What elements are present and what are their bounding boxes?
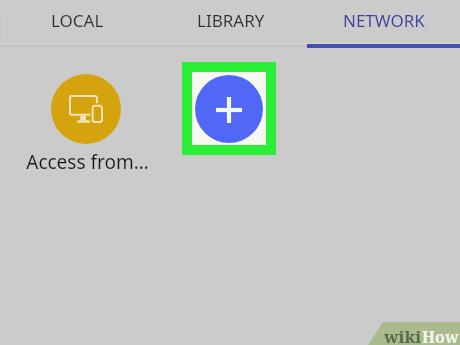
staticText: wiki: [384, 325, 422, 345]
button[interactable]: LIBRARY: [154, 0, 307, 48]
staticText: LIBRARY: [197, 9, 265, 32]
button[interactable]: Add network location: [195, 75, 263, 143]
button[interactable]: Access from another device: [51, 74, 121, 144]
button[interactable]: NETWORK: [307, 0, 460, 48]
staticText: How: [422, 326, 459, 345]
staticText: Access from…: [17, 149, 158, 175]
button[interactable]: LOCAL: [0, 0, 154, 48]
staticText: NETWORK: [343, 9, 425, 32]
staticText: LOCAL: [51, 9, 104, 32]
